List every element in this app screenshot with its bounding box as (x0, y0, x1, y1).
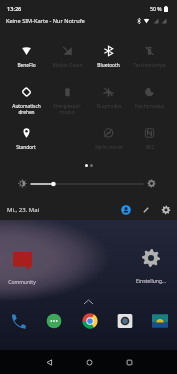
staticText: Community (8, 279, 36, 286)
button[interactable]: Standort (5, 124, 47, 151)
staticText: Taschenlampe (133, 62, 166, 69)
button[interactable]: Back (29, 350, 69, 374)
button[interactable]: Settings (161, 205, 171, 215)
button[interactable]: Camera (107, 310, 142, 331)
button[interactable]: Recent apps (109, 350, 149, 374)
button[interactable]: Brightness (18, 179, 27, 188)
button[interactable]: Edit (141, 205, 151, 215)
staticText: Mi., 23. Mai (7, 206, 40, 214)
staticText: Automatisch drehen (12, 103, 41, 115)
button[interactable]: Chrome (72, 310, 107, 331)
staticText: Keine SIM-Karte - Nur Notrufe (6, 17, 85, 25)
button[interactable]: Flugmodus (88, 83, 129, 110)
staticText: Flugmodus (96, 103, 122, 110)
button[interactable]: NFC (129, 124, 170, 151)
button[interactable]: Energiespar- modus (47, 83, 88, 115)
staticText: Mobile Daten (52, 62, 83, 69)
button[interactable]: Nachtmodus (129, 83, 170, 110)
staticText: Nicht stören (95, 144, 123, 151)
button[interactable]: Nicht stören (88, 124, 129, 151)
button[interactable]: Community (0, 252, 44, 286)
button[interactable]: Automatisch drehen (5, 83, 47, 115)
staticText: Nachtmodus (135, 103, 164, 110)
button[interactable]: Mobile Daten (47, 42, 88, 69)
staticText: Einstellung… (136, 278, 166, 285)
button[interactable]: Auto brightness (147, 179, 156, 188)
staticText: 50 % (150, 5, 162, 12)
button[interactable]: Taschenlampe (129, 42, 170, 69)
button[interactable]: Home (69, 350, 109, 374)
staticText: NFC (145, 144, 155, 151)
button[interactable]: Phone (0, 310, 36, 331)
staticText: Bluetooth (97, 62, 120, 69)
button[interactable]: Messages (36, 310, 72, 331)
staticText: Standort (16, 144, 36, 151)
button[interactable]: Bluetooth (88, 42, 129, 69)
button[interactable]: Photos (142, 310, 177, 331)
button[interactable]: User account (121, 205, 131, 215)
staticText: 13:26 (7, 5, 22, 13)
staticText: BeneFlo (17, 62, 36, 69)
staticText: Energiespar- modus (53, 103, 82, 115)
button[interactable]: BeneFlo (5, 42, 47, 69)
button[interactable]: Einstellung… (129, 249, 173, 285)
